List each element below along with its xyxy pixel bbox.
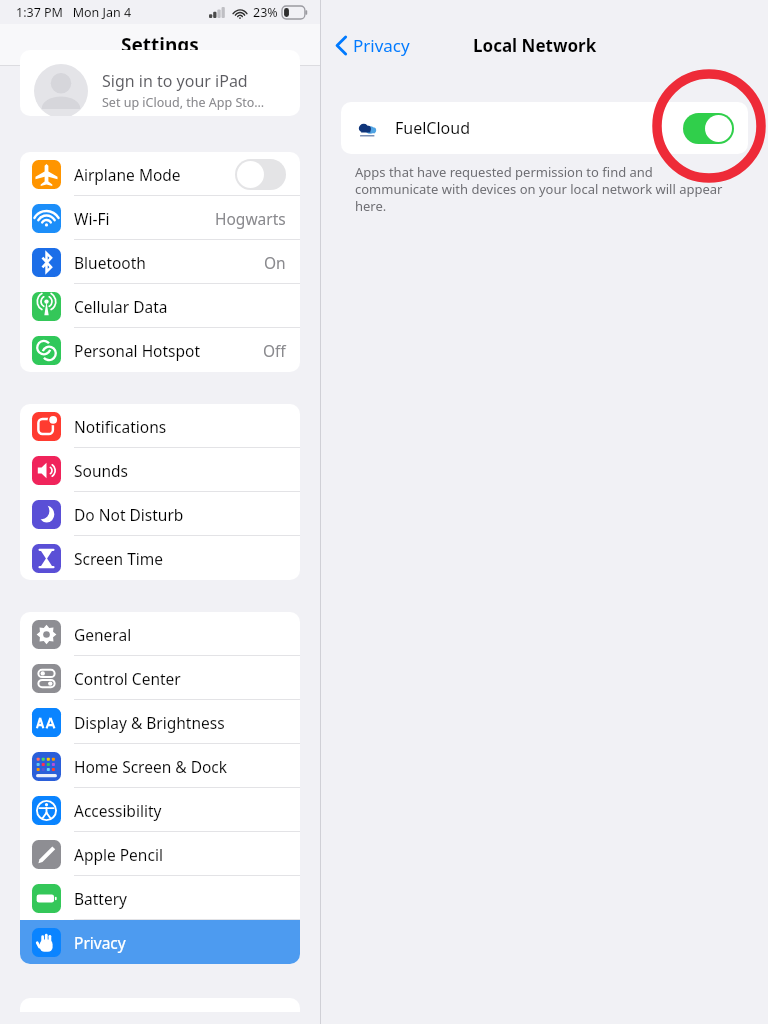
- button[interactable]: Sign in to your iPad: [20, 50, 300, 116]
- button[interactable]: Sounds: [20, 448, 300, 492]
- staticText: Personal Hotspot: [74, 340, 201, 361]
- button[interactable]: FuelCloud: [341, 102, 748, 154]
- staticText: Local Network: [473, 34, 597, 57]
- staticText: Set up iCloud, the App Sto…: [102, 94, 265, 111]
- button[interactable]: Display & Brightness: [20, 700, 300, 744]
- button[interactable]: Control Center: [20, 656, 300, 700]
- staticText: Wi-Fi: [74, 208, 110, 229]
- button[interactable]: Privacy: [20, 920, 300, 964]
- staticText: Accessibility: [74, 800, 162, 821]
- staticText: 1:37 PM Mon Jan 4: [16, 4, 132, 21]
- staticText: Off: [263, 340, 286, 361]
- staticText: Airplane Mode: [74, 164, 181, 185]
- staticText: Battery: [74, 888, 128, 909]
- button[interactable]: Battery: [20, 876, 300, 920]
- staticText: Do Not Disturb: [74, 504, 184, 525]
- staticText: Screen Time: [74, 548, 163, 569]
- button[interactable]: Bluetooth: [20, 240, 300, 284]
- button[interactable]: Toggle off: [235, 159, 286, 190]
- staticText: Privacy: [74, 932, 126, 953]
- staticText: Hogwarts: [215, 208, 286, 229]
- button[interactable]: Accessibility: [20, 788, 300, 832]
- staticText: Apps that have requested permission to f…: [355, 163, 723, 215]
- button[interactable]: Home Screen & Dock: [20, 744, 300, 788]
- staticText: General: [74, 624, 132, 645]
- staticText: Cellular Data: [74, 296, 168, 317]
- button[interactable]: Cellular Data: [20, 284, 300, 328]
- staticText: Privacy: [353, 34, 410, 57]
- button[interactable]: Wi-Fi: [20, 196, 300, 240]
- staticText: Apple Pencil: [74, 844, 163, 865]
- staticText: Settings: [121, 32, 199, 58]
- button[interactable]: Airplane Mode: [20, 152, 300, 196]
- staticText: On: [264, 252, 286, 273]
- staticText: Display & Brightness: [74, 712, 225, 733]
- staticText: Sounds: [74, 460, 129, 481]
- button[interactable]: Do Not Disturb: [20, 492, 300, 536]
- button[interactable]: Notifications: [20, 404, 300, 448]
- staticText: Home Screen & Dock: [74, 756, 228, 777]
- staticText: 23%: [253, 4, 278, 21]
- staticText: Control Center: [74, 668, 181, 689]
- button[interactable]: Privacy: [335, 34, 410, 57]
- button[interactable]: Apple Pencil: [20, 832, 300, 876]
- button[interactable]: Personal Hotspot: [20, 328, 300, 372]
- staticText: Notifications: [74, 416, 167, 437]
- staticText: Bluetooth: [74, 252, 146, 273]
- staticText: Sign in to your iPad: [102, 70, 248, 92]
- button[interactable]: General: [20, 612, 300, 656]
- button[interactable]: Toggle on: [683, 113, 734, 144]
- staticText: FuelCloud: [395, 117, 683, 139]
- button[interactable]: Screen Time: [20, 536, 300, 580]
